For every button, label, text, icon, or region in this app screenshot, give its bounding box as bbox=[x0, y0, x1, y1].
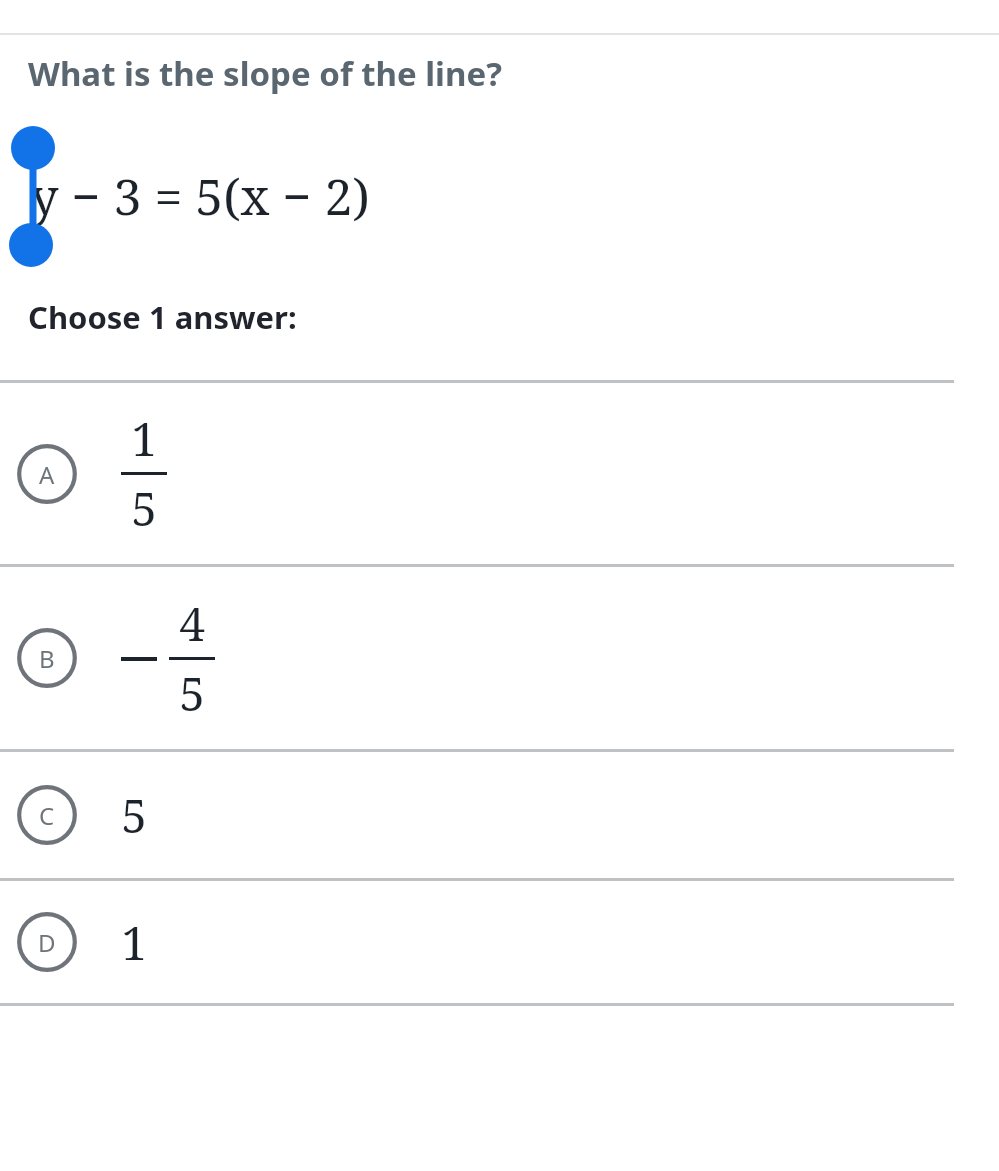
button[interactable]: D bbox=[0, 881, 999, 1003]
button[interactable]: A bbox=[0, 383, 999, 564]
staticText: y − 3 = 5(x − 2) bbox=[30, 162, 370, 230]
staticText: A bbox=[39, 458, 55, 491]
staticText: B bbox=[39, 642, 55, 675]
staticText: Choose 1 answer: bbox=[28, 296, 297, 338]
staticText: 5 bbox=[131, 477, 157, 540]
staticText: 4 bbox=[179, 592, 205, 655]
staticText: 1 bbox=[121, 911, 147, 974]
button[interactable]: C bbox=[0, 752, 999, 878]
staticText: C bbox=[39, 799, 55, 832]
staticText: 1 bbox=[131, 407, 157, 470]
staticText: 5 bbox=[121, 784, 147, 847]
button[interactable]: B bbox=[0, 567, 999, 749]
staticText: D bbox=[38, 926, 56, 959]
staticText: What is the slope of the line? bbox=[28, 51, 502, 96]
staticText: 5 bbox=[179, 662, 205, 725]
